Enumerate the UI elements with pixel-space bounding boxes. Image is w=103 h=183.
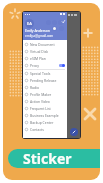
button[interactable]: eSIM Plan xyxy=(23,55,67,62)
staticText: Business Example xyxy=(30,113,59,118)
button[interactable]: Contacts xyxy=(23,126,67,133)
button[interactable]: Account avatar xyxy=(25,19,34,28)
staticText: Contacts xyxy=(30,127,44,132)
staticText: Proxy xyxy=(30,63,39,68)
staticText: Profile Maker xyxy=(30,92,52,97)
button[interactable]: Pending Release xyxy=(23,77,67,84)
button[interactable]: Sticker xyxy=(8,149,100,168)
staticText: Virtual Disk xyxy=(30,49,49,54)
button[interactable]: Frequent List xyxy=(23,105,67,112)
staticText: Action Video xyxy=(30,99,50,104)
button[interactable]: Proxy xyxy=(23,62,67,69)
staticText: Sticker xyxy=(23,149,72,167)
button[interactable]: Profile Maker xyxy=(23,91,67,98)
button[interactable]: Radio xyxy=(23,84,67,91)
button[interactable]: New Document xyxy=(23,41,67,48)
button[interactable]: Backup Center xyxy=(23,119,67,126)
button[interactable]: Action Video xyxy=(23,98,67,105)
staticText: Emily Anderson xyxy=(25,28,50,33)
staticText: EA xyxy=(27,21,32,26)
staticText: emily.a@gmail.com xyxy=(25,34,54,38)
staticText: Frequent List xyxy=(30,106,51,111)
button[interactable]: Special Tools xyxy=(23,70,67,77)
staticText: New Document xyxy=(30,42,55,47)
staticText: Special Tools xyxy=(30,71,51,76)
staticText: Pending Release xyxy=(30,78,57,83)
button[interactable]: Business Example xyxy=(23,112,67,119)
staticText: Radio xyxy=(30,85,40,90)
button[interactable]: Virtual Disk xyxy=(23,48,67,55)
button[interactable]: Compose xyxy=(70,128,78,136)
staticText: Backup Center xyxy=(30,120,54,125)
staticText: eSIM Plan xyxy=(30,56,46,61)
